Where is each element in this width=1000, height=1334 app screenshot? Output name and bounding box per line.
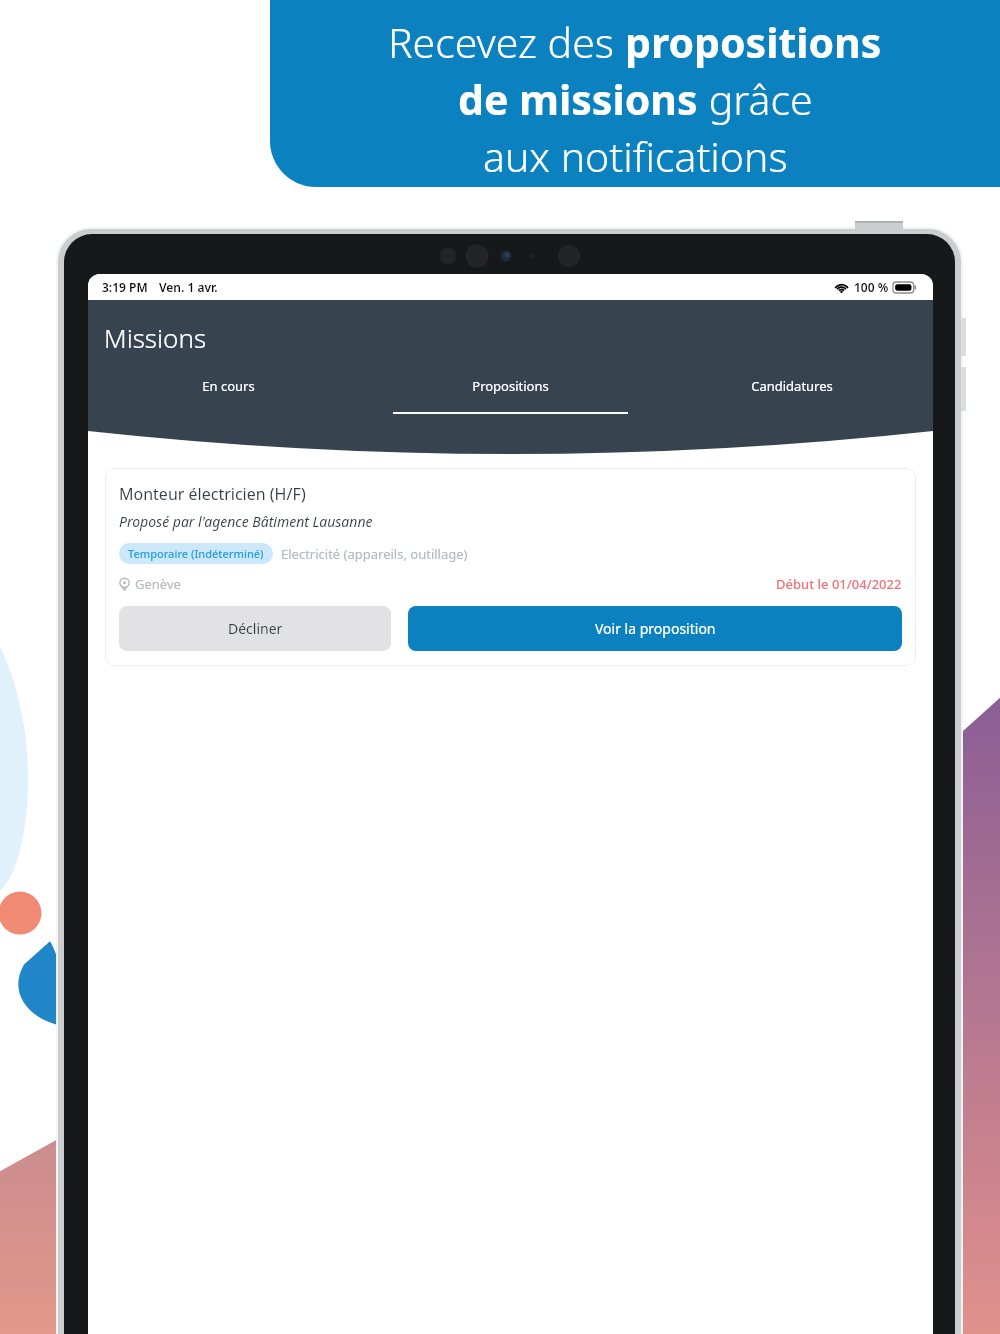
staticText: Monteur électricien (H/F)	[119, 483, 306, 505]
staticText: En cours	[202, 377, 255, 395]
button[interactable]: Monteur électricien (H/F)	[105, 468, 916, 666]
button[interactable]: Voir la proposition	[408, 606, 902, 651]
staticText: Electricité (appareils, outillage)	[281, 545, 468, 563]
staticText: propositions	[625, 14, 882, 70]
button[interactable]: Propositions	[369, 375, 651, 414]
staticText: Genève	[135, 575, 181, 593]
staticText: Candidatures	[751, 377, 833, 395]
button[interactable]: Candidatures	[651, 375, 933, 412]
staticText: 100 %	[854, 279, 889, 295]
staticText: 3:19 PM	[102, 279, 148, 295]
staticText: Ven. 1 avr.	[159, 279, 218, 295]
staticText: Missions	[104, 320, 207, 355]
staticText: de missions	[458, 71, 698, 127]
staticText: Temporaire (Indéterminé)	[128, 546, 264, 561]
button[interactable]: Temporaire (Indéterminé)	[119, 543, 273, 564]
staticText: Propositions	[472, 377, 549, 395]
staticText: Décliner	[228, 619, 283, 638]
staticText: Proposé par l'agence Bâtiment Lausanne	[119, 512, 373, 531]
button[interactable]: Décliner	[119, 606, 391, 651]
staticText: Début le 01/04/2022	[776, 575, 902, 593]
staticText: Recevez des	[388, 14, 625, 70]
button[interactable]: En cours	[88, 375, 369, 412]
staticText: aux notifications	[483, 128, 788, 184]
staticText: Voir la proposition	[595, 619, 716, 638]
staticText: grâce	[698, 71, 813, 127]
other: Location	[119, 578, 130, 591]
